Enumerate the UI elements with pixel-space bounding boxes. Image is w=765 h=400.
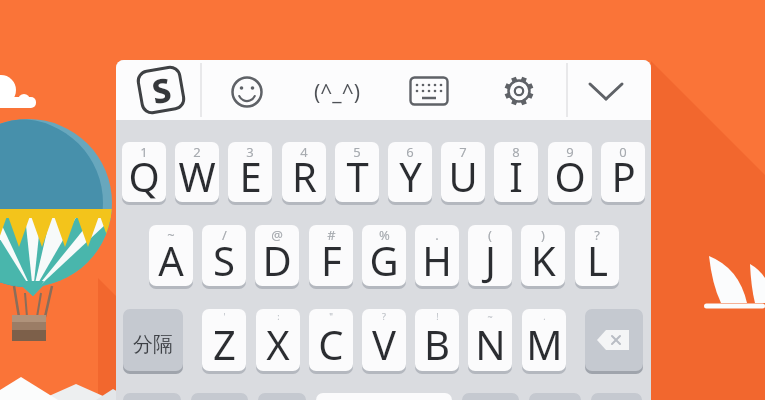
button[interactable] [230,75,264,109]
staticText: 7 [459,143,467,161]
button[interactable]: : [256,309,300,371]
button[interactable]: 8 [494,142,538,202]
staticText: Z [213,317,236,371]
staticText: P [611,149,636,202]
button[interactable] [503,75,535,107]
button[interactable]: 9 [548,142,592,202]
staticText: ' [223,310,226,322]
button[interactable]: @ [255,225,299,286]
staticText: ! [436,310,439,322]
button[interactable]: (^_^) [296,75,378,109]
staticText: D [262,233,292,286]
staticText: ~ [487,310,493,322]
staticText: 9 [566,143,574,161]
staticText: Y [399,149,422,202]
button[interactable]: S [134,63,188,117]
staticText: K [531,233,556,286]
staticText: . [543,310,546,322]
button[interactable]: ~ [468,309,512,371]
staticText: M [526,317,563,371]
staticText: H [422,233,452,286]
button[interactable]: # [309,225,353,286]
button[interactable] [316,393,452,400]
button[interactable]: 4 [282,142,326,202]
staticText: S [148,67,175,114]
staticText: (^_^) [314,78,360,107]
staticText: % [379,226,390,244]
button[interactable]: ? [575,225,619,286]
staticText: N [475,317,506,371]
staticText: E [239,149,262,202]
button[interactable]: ' [202,309,246,371]
staticText: 5 [353,143,361,161]
staticText: 1 [140,143,148,161]
staticText: G [369,233,399,286]
button[interactable]: / [202,225,246,286]
button[interactable]: 7 [441,142,485,202]
button[interactable]: 分隔 [123,309,183,371]
staticText: J [485,233,496,286]
staticText: I [509,149,523,202]
staticText: 6 [406,143,414,161]
button[interactable]: ? [362,309,406,371]
button[interactable]: % [362,225,406,286]
staticText: V [372,317,396,371]
button[interactable] [191,393,248,400]
staticText: O [554,149,586,202]
staticText: 4 [300,143,308,161]
button[interactable] [591,393,642,400]
button[interactable]: ( [468,225,512,286]
button[interactable]: ! [415,309,459,371]
button[interactable]: " [309,309,353,371]
staticText: 8 [512,143,520,161]
button[interactable]: ~ [149,225,193,286]
button[interactable]: 1 [122,142,166,202]
button[interactable]: . [522,309,566,371]
button[interactable]: 5 [335,142,379,202]
button[interactable]: 0 [601,142,645,202]
button[interactable] [529,393,581,400]
button[interactable] [588,82,624,102]
staticText: ? [594,226,600,244]
staticText: 3 [246,143,254,161]
staticText: ( [488,226,492,244]
staticText: ~ [167,226,175,244]
staticText: W [178,149,216,202]
staticText: ? [382,310,386,322]
staticText: S [213,233,235,286]
staticText: F [321,233,342,286]
button[interactable]: 6 [388,142,432,202]
staticText: 分隔 [133,332,173,357]
staticText: / [222,226,227,244]
button[interactable] [123,393,181,400]
staticText: @ [271,226,283,244]
button[interactable] [462,393,519,400]
staticText: : [277,310,280,322]
button[interactable]: ) [521,225,565,286]
staticText: T [346,149,369,202]
staticText: # [327,226,336,244]
button[interactable] [585,309,643,371]
staticText: A [158,233,184,286]
button[interactable] [409,76,449,106]
button[interactable]: 2 [175,142,219,202]
button[interactable] [258,393,306,400]
staticText: . [435,226,439,244]
staticText: L [587,233,608,286]
staticText: C [318,317,344,371]
staticText: R [292,149,317,202]
staticText: U [448,149,478,202]
staticText: X [266,317,290,371]
button[interactable]: . [415,225,459,286]
staticText: " [329,310,333,322]
button[interactable]: 3 [228,142,272,202]
staticText: Q [128,149,160,202]
staticText: ) [541,226,545,244]
staticText: B [424,317,450,371]
staticText: 0 [619,143,627,161]
staticText: 2 [193,143,201,161]
